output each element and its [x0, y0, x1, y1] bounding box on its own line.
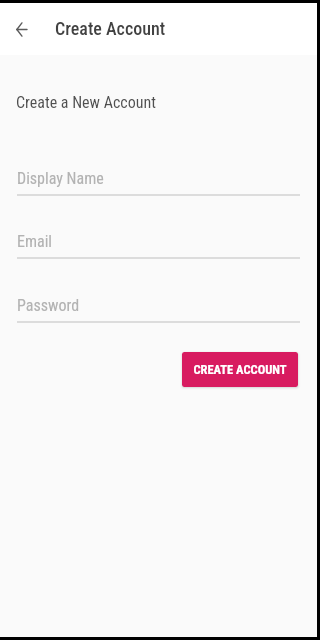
staticText: Password [17, 296, 80, 315]
button[interactable]: CREATE ACCOUNT [182, 352, 298, 387]
button[interactable]: Email [0, 226, 317, 260]
staticText: Email [17, 232, 53, 251]
staticText: CREATE ACCOUNT [193, 362, 287, 377]
button[interactable]: Navigate up [3, 11, 39, 47]
staticText: Create a New Account [16, 93, 156, 112]
staticText: Create Account [55, 18, 166, 39]
button[interactable]: Password [0, 290, 317, 324]
button[interactable]: Display Name [0, 163, 317, 197]
staticText: Display Name [17, 169, 104, 188]
